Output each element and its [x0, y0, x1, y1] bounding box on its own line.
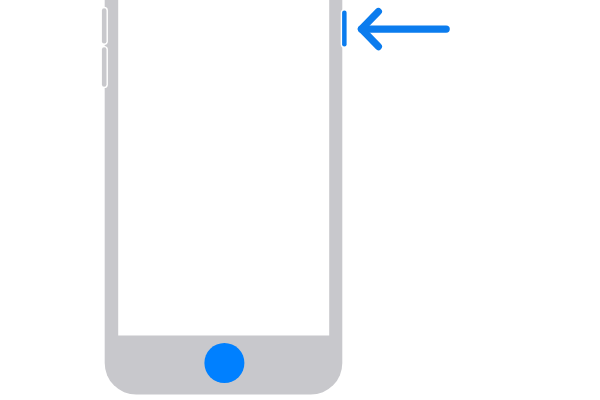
button[interactable]: Home button	[204, 343, 244, 383]
button[interactable]: Volume up button	[100, 7, 109, 45]
button[interactable]: Side button	[340, 9, 349, 48]
button[interactable]: Volume down button	[100, 46, 109, 88]
